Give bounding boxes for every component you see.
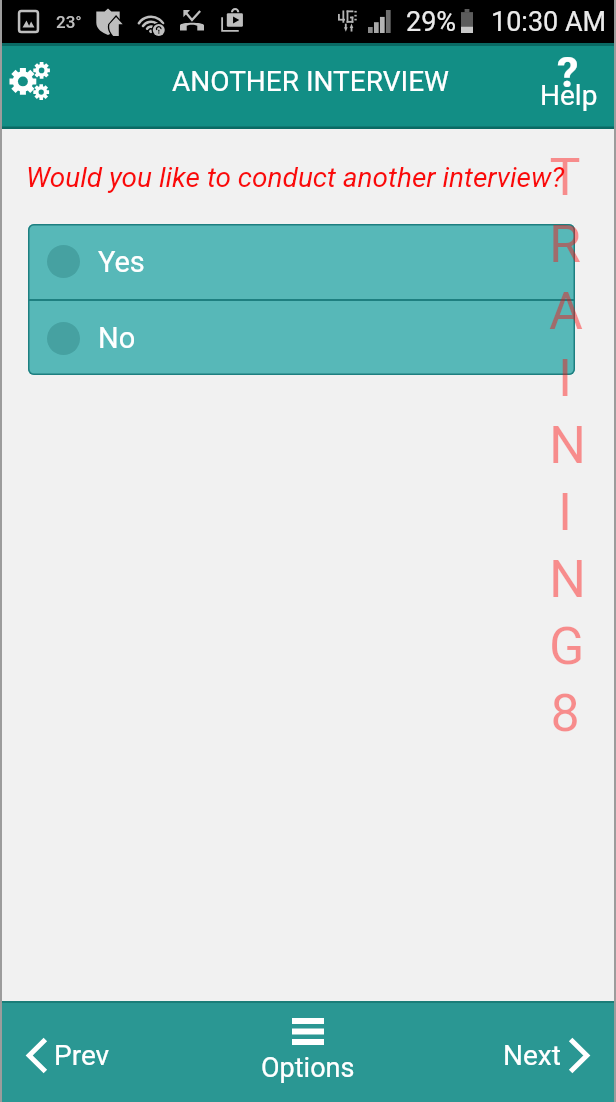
staticText: ANOTHER INTERVIEW <box>172 65 449 98</box>
button[interactable]: Next <box>456 1001 616 1102</box>
button[interactable]: No <box>28 301 575 375</box>
staticText: T R A I N I N G 8 <box>549 147 581 744</box>
staticText: 29% <box>406 6 457 38</box>
staticText: Yes <box>98 245 145 279</box>
staticText: Next <box>503 1039 561 1072</box>
staticText: Options <box>261 1052 355 1084</box>
button[interactable]: Options <box>223 1001 393 1102</box>
staticText: 10:30 AM <box>491 6 607 38</box>
button[interactable]: Settings <box>0 43 72 129</box>
staticText: No <box>98 321 136 355</box>
button[interactable]: Prev <box>0 1001 160 1102</box>
staticText: Help <box>540 79 598 112</box>
staticText: Would you like to conduct another interv… <box>26 161 565 194</box>
staticText: ? <box>557 47 579 97</box>
button[interactable]: Yes <box>28 224 575 299</box>
button[interactable]: ? <box>522 43 616 129</box>
staticText: Prev <box>54 1039 110 1072</box>
staticText: 23° <box>56 12 82 32</box>
